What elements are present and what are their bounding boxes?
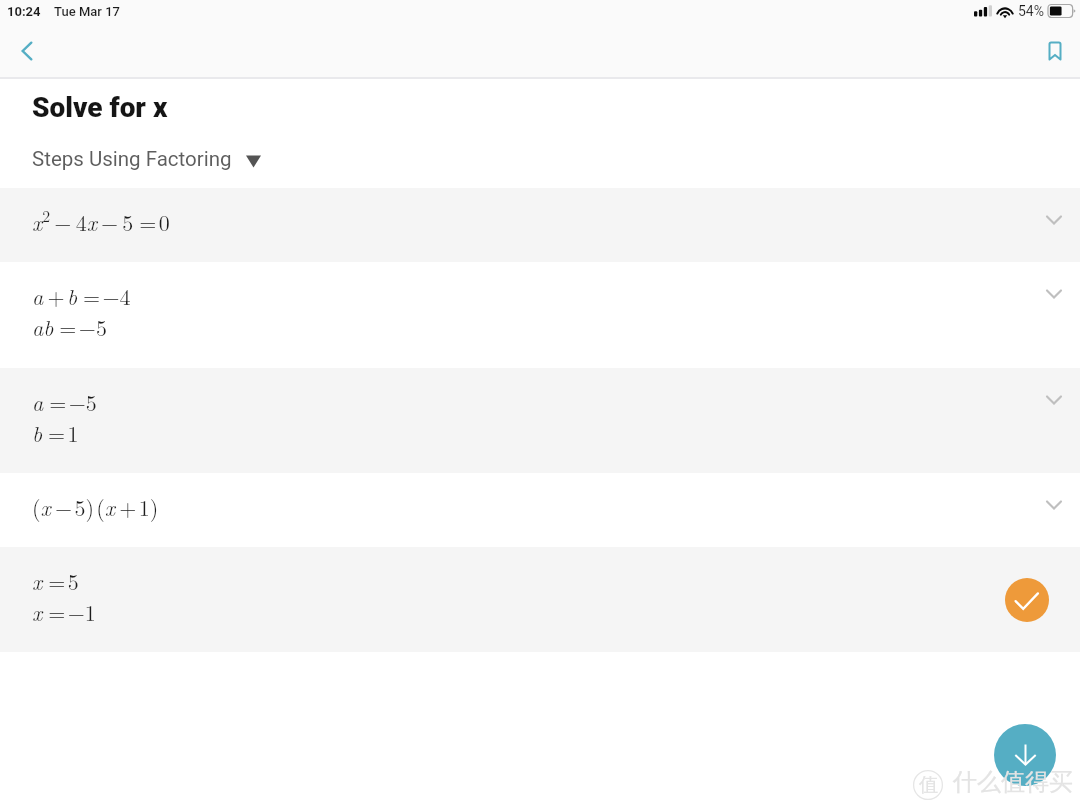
staticText: b = 1 xyxy=(32,417,79,448)
staticText: Steps Using Factoring xyxy=(32,147,232,171)
staticText: (x − 5) (x + 1) xyxy=(32,491,159,522)
button[interactable]: Solution verified xyxy=(1005,578,1049,622)
staticText: Solve for x xyxy=(32,91,168,124)
button[interactable]: Back xyxy=(3,28,49,74)
button[interactable]: Expand step xyxy=(1032,198,1076,242)
staticText: x2 − 4x − 5 = 0 xyxy=(32,204,170,238)
button[interactable]: Steps Using Factoring xyxy=(32,147,261,171)
staticText: 什么值得买 xyxy=(953,767,1073,797)
staticText: 值 xyxy=(919,773,938,797)
button[interactable]: Scroll to bottom xyxy=(994,724,1056,786)
button[interactable]: a + b = −4 xyxy=(0,262,1080,368)
button[interactable]: a = −5 xyxy=(0,368,1080,473)
button[interactable]: Expand step xyxy=(1032,378,1076,422)
staticText: a = −5 xyxy=(32,386,97,417)
staticText: ab = −5 xyxy=(32,311,107,342)
staticText: a + b = −4 xyxy=(32,280,131,311)
button[interactable]: x2 − 4x − 5 = 0 xyxy=(0,188,1080,262)
staticText: x = 5 xyxy=(32,565,79,596)
button[interactable]: (x − 5) (x + 1) xyxy=(0,473,1080,547)
button[interactable]: Bookmark xyxy=(1033,29,1077,73)
button[interactable]: x = 5 xyxy=(0,547,1080,652)
staticText: Tue Mar 17 xyxy=(54,4,120,19)
button[interactable]: Expand step xyxy=(1032,483,1076,527)
button[interactable]: Expand step xyxy=(1032,272,1076,316)
staticText: x = −1 xyxy=(32,596,96,627)
staticText: 54% xyxy=(1018,3,1044,19)
staticText: 10:24 xyxy=(7,4,41,19)
